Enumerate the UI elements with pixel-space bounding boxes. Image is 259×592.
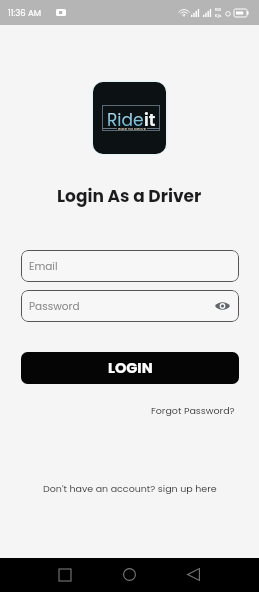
button[interactable]: Password <box>21 290 239 322</box>
staticText: Don't have an account? sign up here <box>43 482 217 495</box>
staticText: Login As a Driver <box>57 184 202 208</box>
staticText: 11:36 AM <box>8 7 41 19</box>
button[interactable]: Home <box>115 560 144 589</box>
staticText: K/s <box>215 13 222 19</box>
button[interactable]: Don't have an account? sign up here <box>43 482 217 495</box>
button[interactable]: Email <box>21 250 239 282</box>
staticText: Forgot Password? <box>151 404 235 417</box>
button[interactable]: Back <box>179 560 208 589</box>
button[interactable]: Recent apps <box>50 560 79 589</box>
staticText: it <box>144 108 156 132</box>
staticText: Password <box>29 299 80 314</box>
staticText: Email <box>29 259 58 274</box>
button[interactable]: Forgot Password? <box>151 404 235 417</box>
button[interactable]: LOGIN <box>21 352 239 384</box>
staticText: LOGIN <box>108 358 153 378</box>
staticText: RIDE TO DRIVE <box>118 126 146 130</box>
staticText: 163 <box>215 7 222 13</box>
staticText: Ride <box>107 108 144 132</box>
button[interactable]: Show password <box>213 297 231 315</box>
